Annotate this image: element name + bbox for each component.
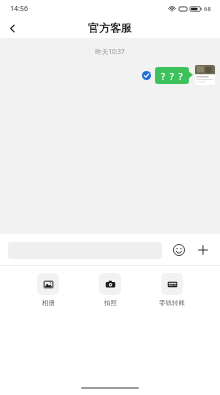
button[interactable]: ? ? ? [155, 67, 189, 84]
staticText: 68 [204, 5, 211, 13]
staticText: 14:56 [10, 4, 28, 14]
staticText: 相册 [42, 299, 55, 307]
staticText: ? ? ? [161, 70, 183, 82]
button[interactable]: 拍照 [86, 273, 134, 307]
button[interactable]: More [194, 241, 212, 259]
button[interactable]: Emoji [170, 241, 188, 259]
staticText: 官方客服 [88, 21, 132, 35]
staticText: 拍照 [104, 299, 117, 307]
button[interactable]: Avatar [195, 65, 215, 85]
button[interactable]: 相册 [24, 273, 72, 307]
staticText: 零钱转账 [159, 299, 185, 307]
button[interactable]: Back [0, 18, 24, 38]
staticText: 昨天10:37 [0, 47, 220, 56]
button[interactable]: 零钱转账 [148, 273, 196, 307]
